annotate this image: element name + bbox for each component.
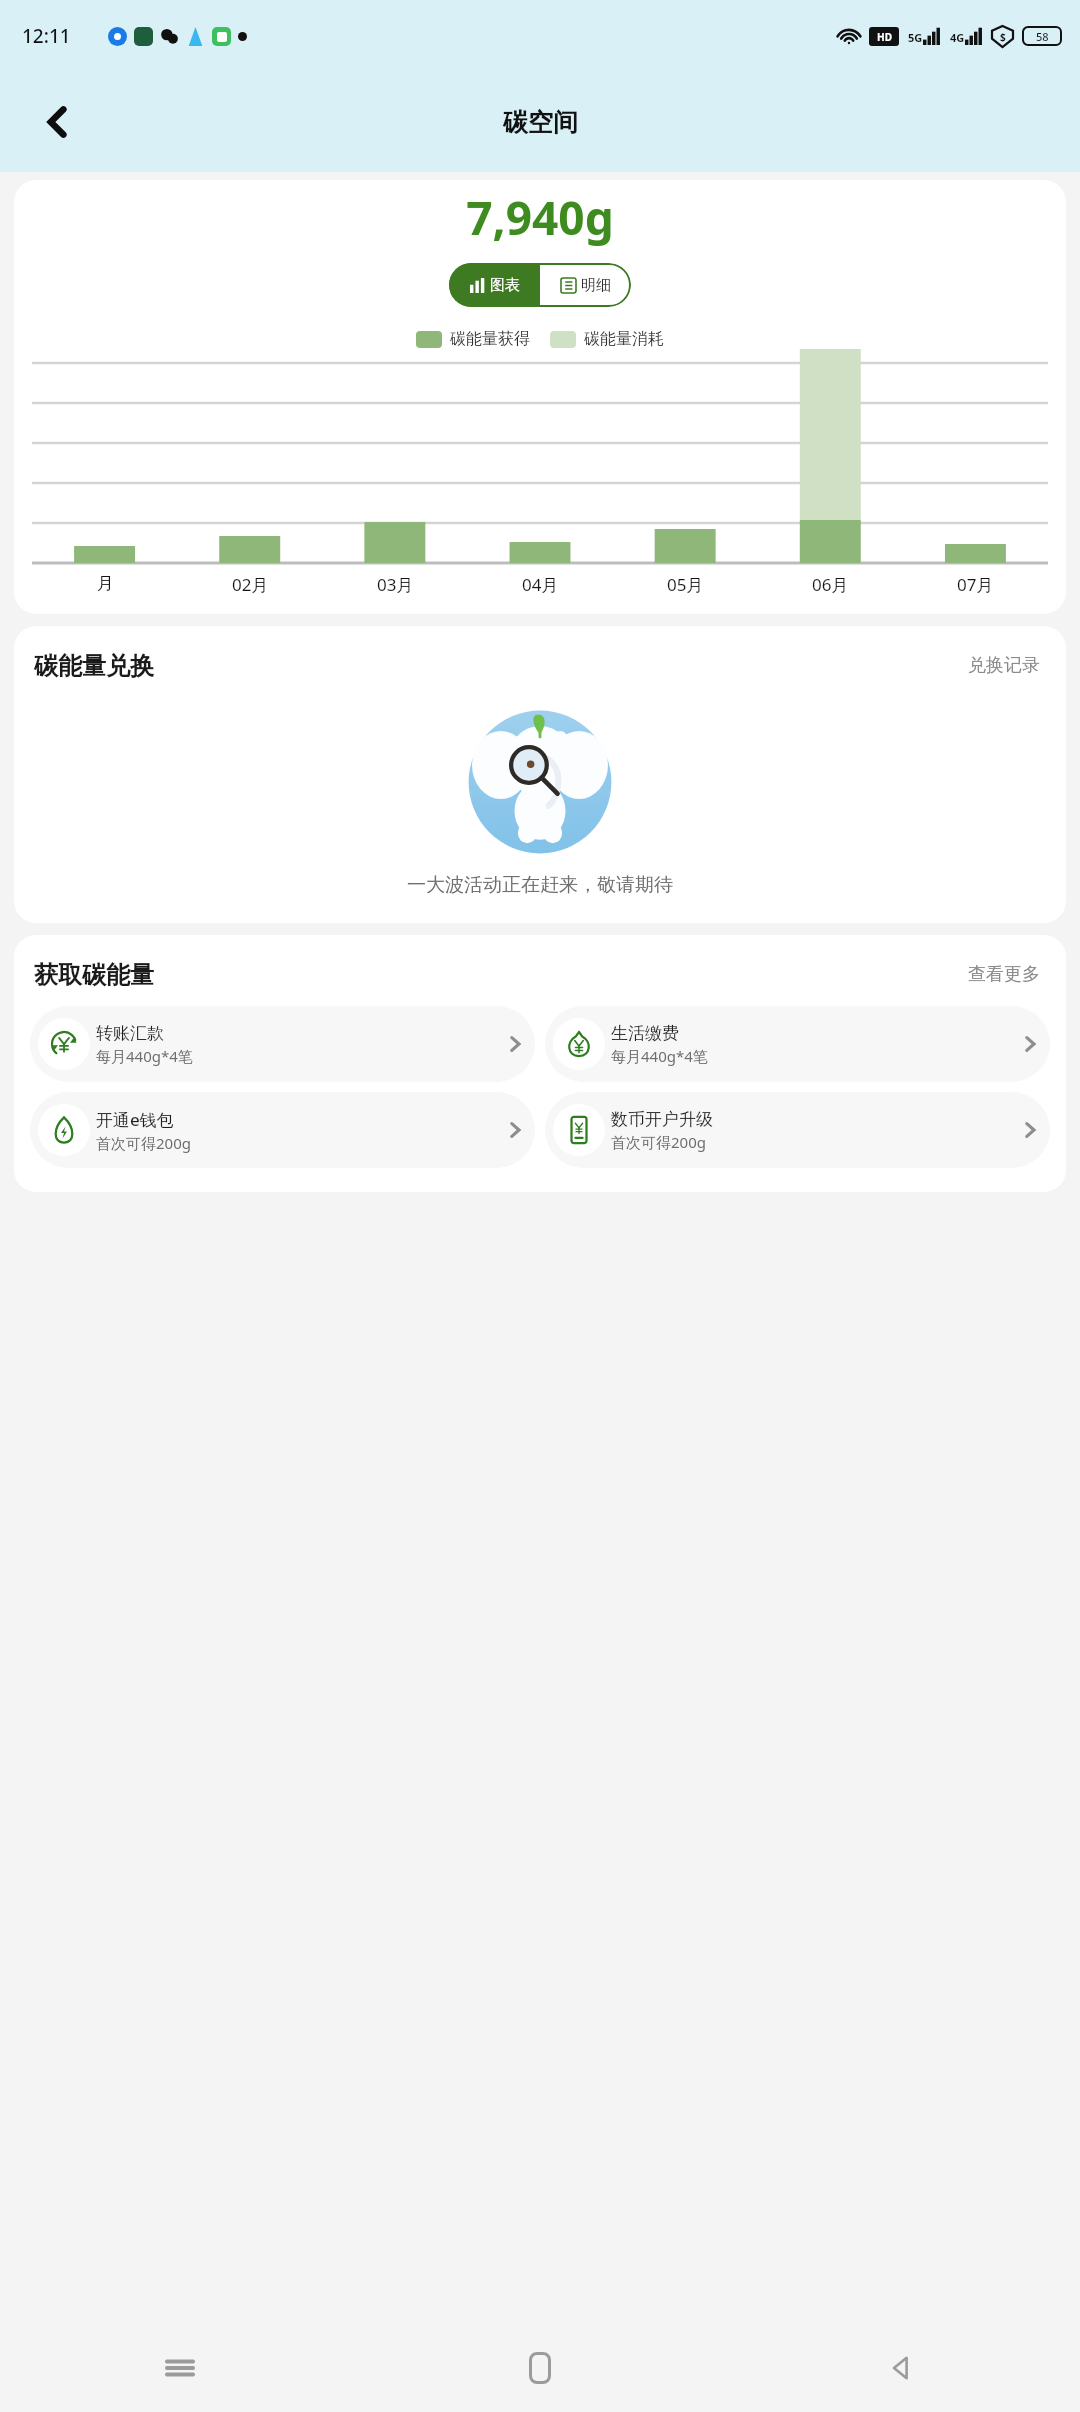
staticText: 4G — [950, 30, 965, 45]
staticText: 12:11 — [22, 23, 71, 49]
staticText: 每月440g*4笔 — [96, 1046, 193, 1066]
staticText: 首次可得200g — [611, 1132, 706, 1152]
staticText: 一大波活动正在赶来，敬请期待 — [14, 873, 1066, 897]
staticText: 首次可得200g — [96, 1133, 191, 1153]
button[interactable]: 返回 — [30, 94, 86, 150]
button[interactable]: 开通e钱包 — [30, 1092, 535, 1168]
staticText: HD — [877, 30, 892, 44]
staticText: 06月 — [812, 573, 849, 596]
staticText: 碳空间 — [503, 107, 578, 138]
staticText: 每月440g*4笔 — [611, 1046, 708, 1066]
button[interactable]: 数币开户升级 — [545, 1092, 1050, 1168]
button[interactable]: 查看更多 — [962, 957, 1046, 992]
staticText: 月 — [97, 573, 114, 594]
staticText: 04月 — [522, 573, 559, 596]
staticText: 碳能量消耗 — [584, 329, 664, 349]
staticText: 5G — [908, 30, 923, 45]
button[interactable]: 兑换记录 — [962, 648, 1046, 683]
staticText: 转账汇款 — [96, 1023, 164, 1044]
staticText: 兑换记录 — [968, 654, 1040, 677]
staticText: 开通e钱包 — [96, 1108, 174, 1131]
button[interactable]: 返回 — [720, 2324, 1080, 2412]
button[interactable]: 主页 — [360, 2324, 720, 2412]
staticText: 7,940g — [14, 186, 1066, 249]
button[interactable]: 生活缴费 — [545, 1006, 1050, 1082]
staticText: 58 — [1036, 29, 1049, 44]
staticText: 碳能量兑换 — [34, 651, 154, 681]
staticText: 图表 — [490, 276, 520, 295]
button[interactable]: 最近任务 — [0, 2324, 360, 2412]
staticText: 03月 — [377, 573, 414, 596]
button[interactable]: 转账汇款 — [30, 1006, 535, 1082]
staticText: $ — [1000, 30, 1006, 44]
staticText: 明细 — [581, 276, 611, 295]
button[interactable]: 明细 — [540, 263, 631, 307]
staticText: 查看更多 — [968, 963, 1040, 986]
staticText: 02月 — [232, 573, 269, 596]
staticText: 数币开户升级 — [611, 1109, 713, 1130]
staticText: 生活缴费 — [611, 1023, 679, 1044]
staticText: 获取碳能量 — [34, 960, 154, 990]
button[interactable]: 图表 — [449, 263, 540, 307]
staticText: 07月 — [957, 573, 994, 596]
staticText: 05月 — [667, 573, 704, 596]
staticText: 碳能量获得 — [450, 329, 530, 349]
